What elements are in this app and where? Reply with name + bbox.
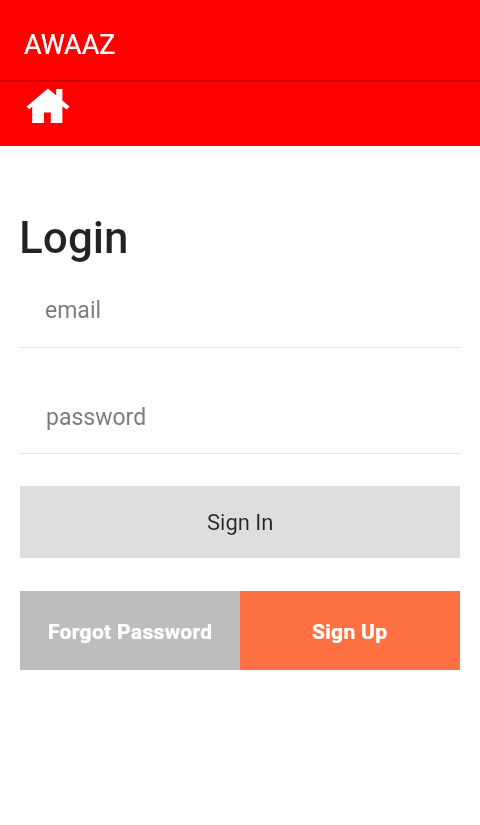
button[interactable]: Sign In xyxy=(20,486,460,558)
button[interactable]: Forgot Password xyxy=(20,591,240,670)
button[interactable]: Home xyxy=(14,82,78,146)
staticText: Forgot Password xyxy=(48,620,213,645)
staticText: password xyxy=(46,404,147,431)
staticText: email xyxy=(45,297,102,324)
staticText: Login xyxy=(19,212,129,264)
staticText: Sign In xyxy=(207,510,274,536)
staticText: AWAAZ xyxy=(24,29,116,61)
button[interactable]: Sign Up xyxy=(240,591,460,670)
staticText: Sign Up xyxy=(312,620,388,645)
